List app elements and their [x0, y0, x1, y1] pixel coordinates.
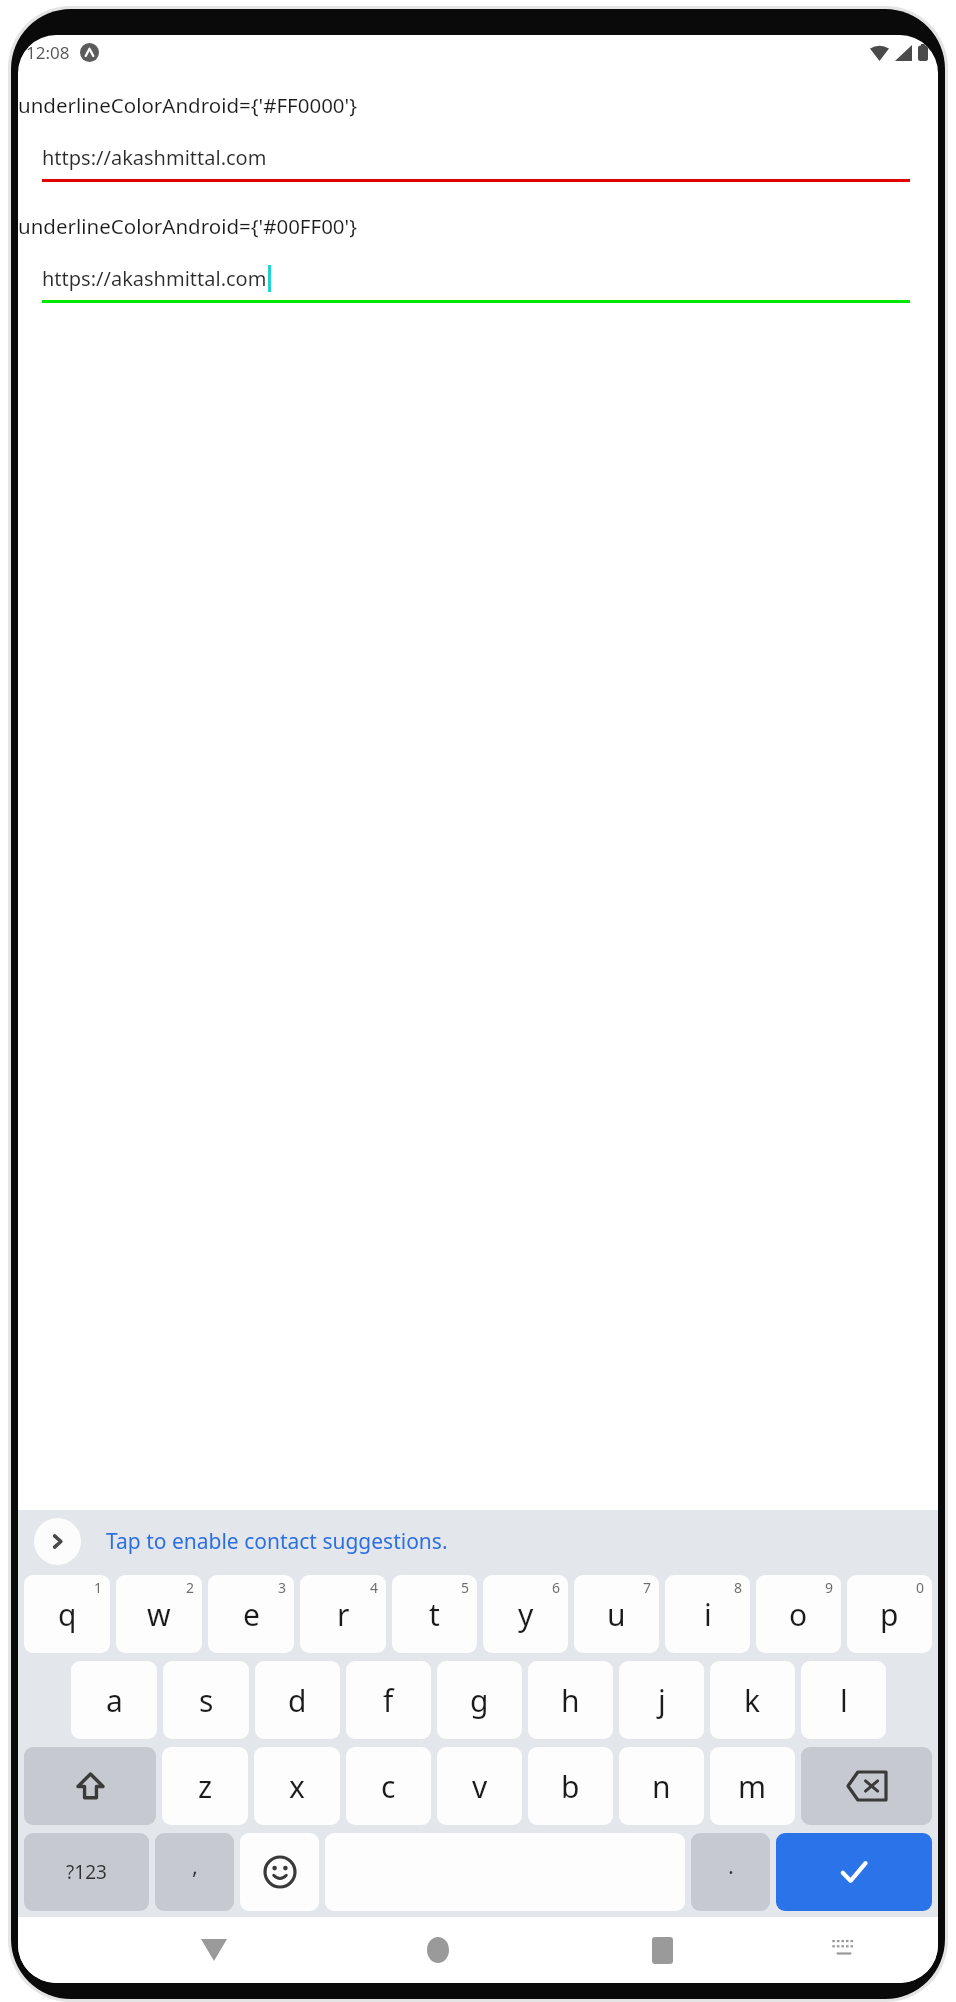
staticText: 5 [461, 1578, 470, 1597]
staticText: i [704, 1594, 712, 1635]
button[interactable]: e [208, 1575, 294, 1653]
staticText: https://akashmittal.com [42, 265, 267, 292]
button[interactable]: Back [187, 1923, 241, 1977]
staticText: u [607, 1594, 626, 1635]
staticText: n [652, 1766, 671, 1807]
button[interactable]: z [162, 1747, 248, 1825]
button[interactable]: c [346, 1747, 431, 1825]
staticText: q [58, 1594, 77, 1635]
staticText: l [840, 1680, 848, 1721]
staticText: k [744, 1680, 761, 1721]
staticText: t [429, 1594, 440, 1635]
staticText: h [561, 1680, 580, 1721]
staticText: underlineColorAndroid={'#FF0000'} [18, 91, 357, 119]
staticText: 12:08 [26, 41, 70, 64]
button[interactable]: Emoji [240, 1833, 319, 1911]
button[interactable]: Recent apps [635, 1923, 689, 1977]
staticText: 2 [186, 1578, 195, 1597]
button[interactable]: o [756, 1575, 841, 1653]
button[interactable]: Home [411, 1923, 465, 1977]
staticText: j [658, 1680, 666, 1721]
button[interactable]: a [71, 1661, 157, 1739]
staticText: v [472, 1766, 488, 1807]
button[interactable]: https://akashmittal.com [42, 144, 910, 182]
staticText: 8 [734, 1578, 743, 1597]
button[interactable]: Enter [776, 1833, 932, 1911]
staticText: d [288, 1680, 307, 1721]
button[interactable]: t [392, 1575, 477, 1653]
staticText: Tap to enable contact suggestions. [106, 1527, 448, 1556]
staticText: c [381, 1766, 396, 1807]
staticText: 7 [643, 1578, 652, 1597]
staticText: b [561, 1766, 580, 1807]
staticText: https://akashmittal.com [42, 144, 267, 171]
button[interactable]: q [24, 1575, 110, 1653]
staticText: r [337, 1594, 350, 1635]
staticText: 9 [825, 1578, 834, 1597]
button[interactable]: g [437, 1661, 522, 1739]
button[interactable]: v [437, 1747, 522, 1825]
button[interactable]: l [801, 1661, 886, 1739]
button[interactable]: x [254, 1747, 340, 1825]
button[interactable]: j [619, 1661, 704, 1739]
staticText: p [880, 1594, 899, 1635]
staticText: m [738, 1766, 767, 1807]
staticText: 4 [370, 1578, 379, 1597]
button[interactable]: f [346, 1661, 431, 1739]
staticText: 0 [916, 1578, 925, 1597]
button[interactable]: , [155, 1833, 234, 1911]
staticText: x [289, 1766, 305, 1807]
button[interactable]: d [255, 1661, 340, 1739]
staticText: underlineColorAndroid={'#00FF00'} [18, 212, 357, 240]
staticText: 1 [94, 1578, 103, 1597]
button[interactable]: b [528, 1747, 613, 1825]
staticText: y [518, 1594, 534, 1635]
staticText: e [243, 1594, 260, 1635]
button[interactable]: m [710, 1747, 795, 1825]
button[interactable]: ?123 [24, 1833, 149, 1911]
staticText: f [383, 1680, 394, 1721]
button[interactable]: r [300, 1575, 386, 1653]
button[interactable]: s [163, 1661, 249, 1739]
button[interactable]: Shift [24, 1747, 156, 1825]
button[interactable]: h [528, 1661, 613, 1739]
staticText: , [192, 1850, 198, 1880]
staticText: ?123 [66, 1859, 107, 1885]
staticText: w [147, 1594, 171, 1635]
button[interactable]: w [116, 1575, 202, 1653]
staticText: 3 [278, 1578, 287, 1597]
staticText: 6 [552, 1578, 561, 1597]
staticText: a [106, 1680, 123, 1721]
staticText: s [199, 1680, 214, 1721]
button[interactable]: k [710, 1661, 795, 1739]
button[interactable]: . [691, 1833, 770, 1911]
button[interactable]: Expand suggestions [34, 1518, 81, 1565]
button[interactable]: i [665, 1575, 750, 1653]
button[interactable]: n [619, 1747, 704, 1825]
staticText: . [728, 1850, 734, 1880]
button[interactable]: p [847, 1575, 932, 1653]
staticText: z [198, 1766, 213, 1807]
staticText: o [789, 1594, 808, 1635]
button[interactable]: y [483, 1575, 568, 1653]
button[interactable]: Backspace [801, 1747, 932, 1825]
staticText: g [470, 1680, 489, 1721]
button[interactable]: https://akashmittal.com [42, 265, 910, 303]
button[interactable]: u [574, 1575, 659, 1653]
button[interactable]: Switch keyboard [820, 1926, 868, 1974]
button[interactable]: Expand suggestions [18, 1510, 938, 1572]
